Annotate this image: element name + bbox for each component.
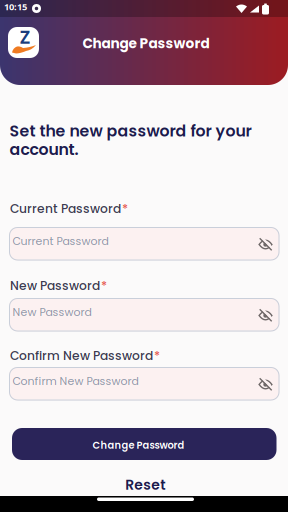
staticText: *	[154, 347, 160, 364]
button[interactable]: Show password	[254, 304, 276, 326]
staticText: New Password	[12, 304, 91, 320]
staticText: *	[101, 277, 107, 294]
staticText: Current Password	[10, 200, 121, 217]
staticText: Current Password	[12, 233, 108, 249]
staticText: Reset	[125, 475, 165, 495]
staticText: *	[122, 200, 128, 217]
staticText: Z	[20, 25, 30, 49]
button[interactable]: Change Password	[12, 428, 276, 460]
staticText: Confirm New Password	[10, 347, 153, 364]
staticText: Change Password	[92, 438, 184, 452]
staticText: account.	[9, 138, 78, 160]
staticText: Set the new password for your	[9, 120, 251, 142]
button[interactable]: Show password	[254, 373, 276, 395]
staticText: Change Password	[82, 34, 209, 53]
staticText: Confirm New Password	[12, 373, 138, 389]
staticText: New Password	[10, 277, 100, 294]
button[interactable]: Reset	[1, 475, 288, 495]
staticText: 10:15	[4, 0, 27, 13]
button[interactable]: Show password	[254, 233, 276, 255]
